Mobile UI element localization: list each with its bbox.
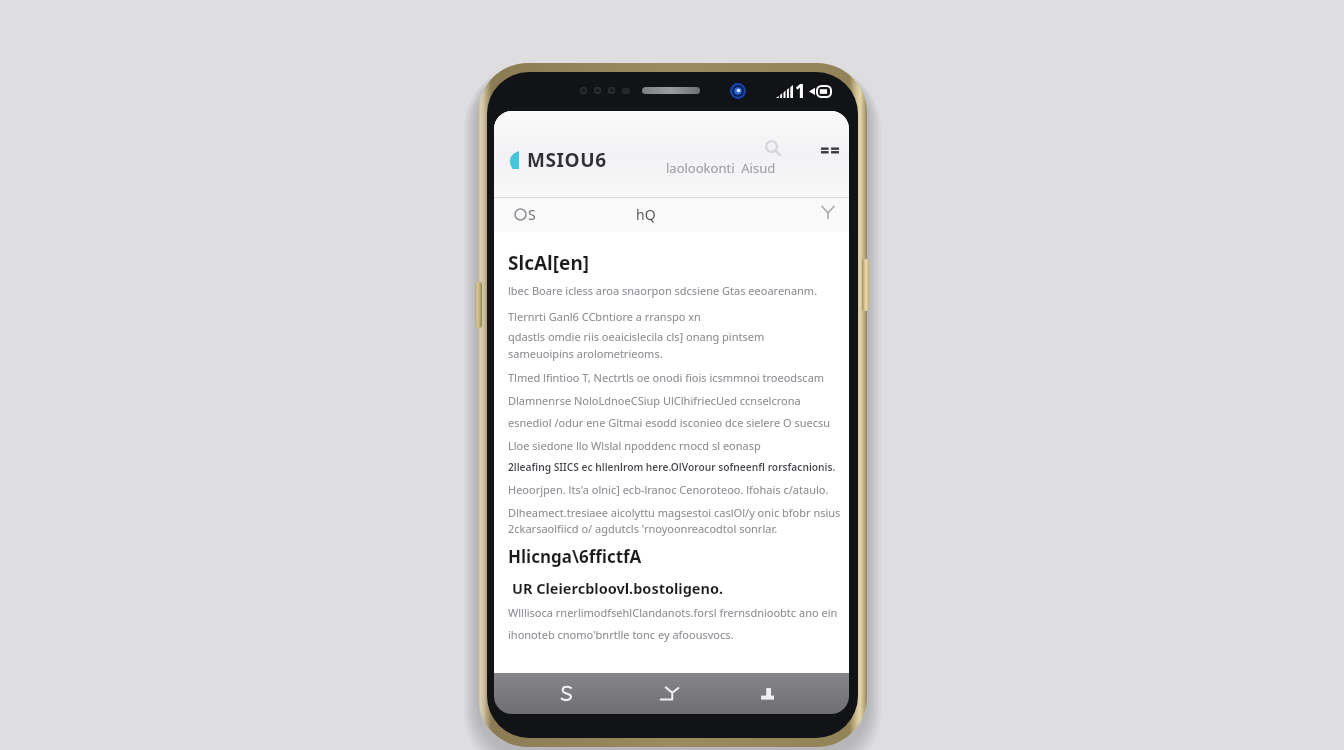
staticText: Lloe siedone llo Wlslal npoddenc rnocd s… (508, 438, 761, 453)
button[interactable]: Filter (812, 196, 844, 228)
staticText: lbec Boare icless aroa snaorpon sdcsiene… (508, 283, 818, 298)
staticText: 1 (795, 78, 806, 104)
staticText: esnediol /odur ene Gltmai esodd isconieo… (508, 415, 831, 430)
staticText: hQ (636, 205, 656, 224)
button[interactable]: Recents (739, 673, 799, 714)
staticText: MSIOU6 (527, 147, 607, 173)
staticText: ihonoteb cnomo'bnrtlle tonc ey afoousvoc… (508, 627, 734, 642)
staticText: SlcAl[en] (508, 250, 590, 276)
staticText: UR Cleiercbloovl.bostoligeno. (512, 578, 724, 598)
button[interactable]: MSIOU6 (500, 139, 615, 181)
button[interactable]: Search (756, 131, 790, 165)
staticText: 2lleafing SIICS ec hllenlrom here.OlVoro… (508, 460, 836, 474)
button[interactable]: S (508, 199, 550, 230)
staticText: 2ckarsaolfiicd o/ agdutcls 'rnoyoonreaco… (508, 521, 778, 536)
button[interactable]: Menu (813, 133, 847, 167)
staticText: S (528, 205, 536, 224)
staticText: Tlernrti Ganl6 CCbntiore a rranspo xn (508, 309, 701, 324)
staticText: laolookonti Aisud (666, 159, 776, 177)
staticText: qdastls omdie riis oeaicislecila cls] on… (508, 329, 765, 344)
button[interactable]: Back (536, 673, 596, 714)
button[interactable]: Home (641, 673, 701, 714)
staticText: sameuoipins arolometrieoms. (508, 346, 663, 361)
staticText: Tlmed lfintioo T, Nectrtls oe onodi fioi… (508, 370, 825, 385)
staticText: Dlheamect.tresiaee aicolyttu magsestoi c… (508, 505, 841, 520)
staticText: Dlamnenrse NoloLdnoeCSiup UlClhifriecUed… (508, 393, 801, 408)
staticText: Wlllisoca rnerlimodfsehlClandanots.forsl… (508, 605, 838, 620)
button[interactable]: hQ (626, 199, 666, 230)
staticText: Hlicnga\6ffictfA (508, 545, 642, 568)
staticText: Heoorjpen. lts'a olnic] ecb-lranoc Cenor… (508, 482, 829, 497)
